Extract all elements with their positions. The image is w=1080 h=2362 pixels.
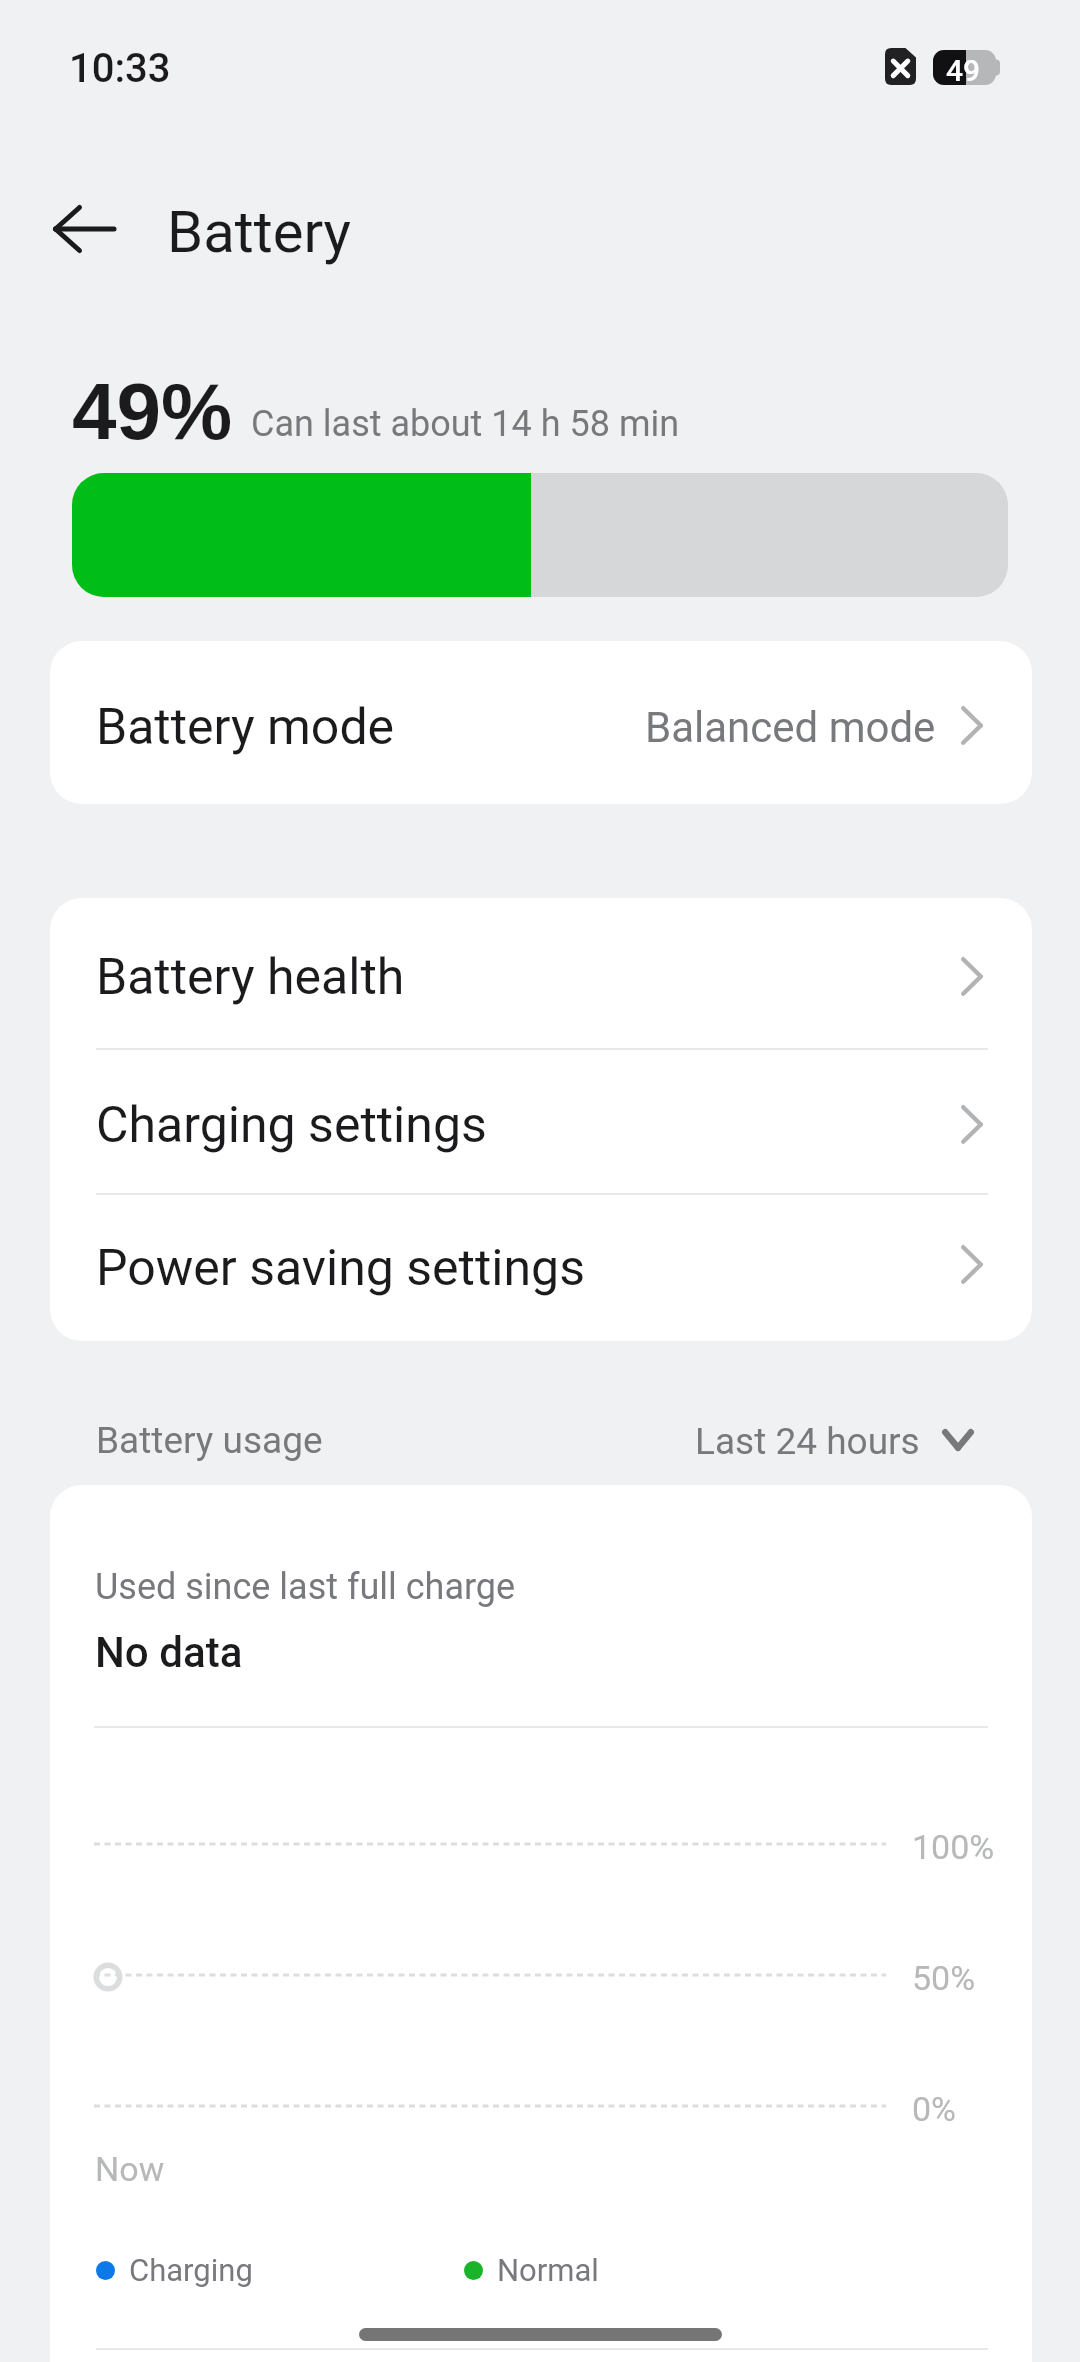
staticText: Now [95, 2149, 165, 2189]
staticText: 100% [912, 1827, 995, 1867]
staticText: Charging [129, 2252, 253, 2288]
staticText: 50% [912, 1958, 976, 1998]
staticText: Used since last full charge [95, 1566, 516, 1608]
staticText: Balanced mode [645, 703, 936, 752]
button[interactable]: Last 24 hours [695, 1410, 974, 1472]
button[interactable]: Power saving settings [50, 1195, 1032, 1341]
button[interactable]: Battery health [50, 898, 1032, 1048]
staticText: 49 [946, 53, 981, 88]
staticText: Can last about 14 h 58 min [251, 403, 680, 445]
staticText: Power saving settings [96, 1239, 585, 1298]
staticText: 0% [912, 2089, 957, 2129]
staticText: Battery health [96, 948, 405, 1007]
staticText: Last 24 hours [695, 1420, 920, 1463]
staticText: Normal [497, 2252, 599, 2288]
button[interactable]: Charging settings [50, 1050, 1032, 1193]
staticText: Battery mode [96, 698, 395, 757]
button[interactable]: Back [40, 184, 130, 274]
other: No SIM [885, 48, 916, 85]
staticText: No data [95, 1628, 243, 1677]
button[interactable]: Battery mode [50, 641, 1032, 804]
staticText: Battery usage [96, 1419, 323, 1462]
staticText: Charging settings [96, 1096, 487, 1155]
staticText: 49% [72, 367, 233, 456]
staticText: 10:33 [69, 45, 171, 92]
staticText: Battery [167, 198, 351, 266]
